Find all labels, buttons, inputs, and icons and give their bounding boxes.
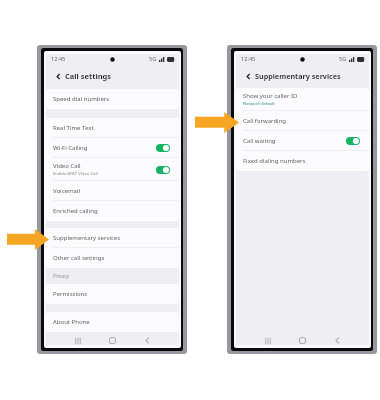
button[interactable]: Enriched calling [46,201,179,221]
button[interactable]: Supplementary services [46,228,179,248]
staticText: Video Call [53,162,81,170]
staticText: 5G [339,55,347,63]
button[interactable]: Recents [60,336,95,345]
other: Back [334,337,341,344]
button[interactable]: Home [285,336,320,345]
button[interactable]: Home [95,336,130,345]
button[interactable]: Back [320,336,355,345]
button[interactable]: Back [52,70,64,82]
staticText: Supplementary services [53,234,121,242]
staticText: Fixed dialing numbers [243,157,306,165]
button[interactable]: Call forwarding [236,111,369,131]
button[interactable]: Voicemail [46,181,179,201]
button[interactable]: Recents [250,336,285,345]
staticText: Privacy [53,273,69,280]
staticText: Other call settings [53,254,105,262]
button[interactable]: Fixed dialing numbers [236,151,369,171]
staticText: Speed dial numbers [53,95,110,103]
button[interactable]: Permissions [46,284,179,304]
staticText: Call waiting [243,137,276,145]
staticText: Real Time Text [53,124,94,132]
other: Home [299,337,306,344]
staticText: About Phone [53,318,90,326]
staticText: Supplementary services [255,71,341,81]
staticText: Enable AT&T Video Call [53,171,98,177]
button[interactable]: Back [130,336,165,345]
button[interactable]: Wi-Fi Calling [46,138,179,158]
button[interactable]: Real Time Text [46,118,179,138]
staticText: Call forwarding [243,117,287,125]
button[interactable]: Other call settings [46,248,179,268]
button[interactable]: About Phone [46,312,179,332]
button[interactable]: Video Call [46,158,179,181]
button[interactable]: Show your caller ID [236,88,369,111]
button[interactable]: Back [242,70,254,82]
staticText: Show your caller ID [243,92,298,100]
other: Home [109,337,116,344]
staticText: 12:45 [241,55,256,63]
other: Recents [74,337,82,345]
staticText: Wi-Fi Calling [53,144,88,152]
other: Recents [264,337,272,345]
button[interactable]: Call waiting [236,131,369,151]
staticText: Enriched calling [53,207,98,215]
other: Back [144,337,151,344]
staticText: Voicemail [53,187,80,195]
staticText: Permissions [53,290,88,298]
staticText: 5G [149,55,157,63]
staticText: 12:45 [51,55,66,63]
staticText: Call settings [65,71,112,81]
staticText: Network default [243,101,275,107]
button[interactable]: Speed dial numbers [46,89,179,109]
